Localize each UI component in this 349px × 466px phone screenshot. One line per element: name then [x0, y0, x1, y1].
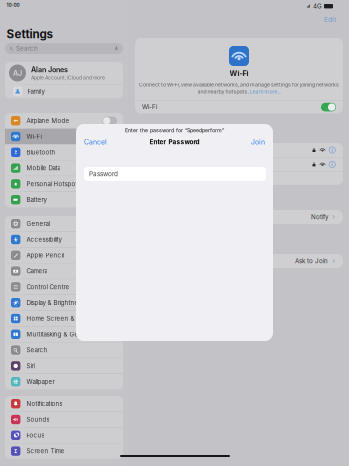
button[interactable]: Apple Pencil — [5, 248, 123, 263]
staticText: Focus — [26, 432, 44, 439]
staticText: and nearby hotspots. — [197, 88, 249, 95]
staticText: Bluetooth — [26, 149, 55, 156]
staticText: Alan Jones — [31, 65, 68, 74]
staticText: Learn more... — [249, 88, 280, 95]
staticText: Siri — [26, 362, 34, 370]
staticText: Sounds — [26, 416, 49, 423]
button[interactable]: Notifications — [5, 396, 123, 411]
button[interactable]: Camera — [5, 263, 123, 279]
staticText: Mobile Data — [26, 164, 60, 172]
button[interactable]: Display & Brightness — [5, 295, 123, 310]
button[interactable]: Wi-Fi — [5, 129, 123, 144]
staticText: Search — [16, 45, 38, 52]
button[interactable]: Ask to Join — [135, 254, 343, 268]
button[interactable]: Airplane Mode — [5, 113, 123, 128]
button[interactable]: Wallpaper — [5, 374, 123, 389]
staticText: 4G — [313, 2, 322, 10]
button[interactable]: Bluetooth — [5, 145, 123, 160]
staticText: General — [26, 220, 49, 227]
staticText: Notifications — [26, 400, 62, 407]
button[interactable]: Search — [5, 342, 123, 358]
staticText: Screen Time — [26, 447, 64, 455]
staticText: 10:00 — [6, 2, 19, 8]
button[interactable]: General — [5, 216, 123, 231]
staticText: Join — [251, 138, 265, 146]
button[interactable]: Multitasking & Gestures — [5, 327, 123, 342]
staticText: Airplane Mode — [26, 117, 69, 124]
staticText: Password — [89, 170, 118, 178]
staticText: Family — [27, 88, 44, 95]
button[interactable]: Battery — [5, 192, 123, 207]
button[interactable]: Accessibility — [5, 232, 123, 247]
button[interactable]: Screen Time — [5, 443, 123, 459]
staticText: Control Centre — [26, 283, 69, 291]
staticText: Personal Hotspot — [26, 180, 77, 188]
staticText: Ask to Join — [295, 257, 328, 265]
button[interactable]: AJ — [5, 62, 123, 84]
button[interactable]: Personal Hotspot — [5, 176, 123, 192]
staticText: Connect to Wi-Fi, view available network… — [139, 81, 339, 88]
staticText: Accessibility — [26, 236, 61, 243]
staticText: Enter Password — [149, 138, 199, 146]
staticText: Settings — [6, 27, 52, 41]
staticText: Apple Pencil — [26, 252, 63, 259]
staticText: Enter the password for “Speedperform” — [125, 127, 224, 133]
button[interactable]: Cancel — [84, 137, 110, 147]
staticText: Apple Account, iCloud and more — [31, 74, 105, 81]
staticText: Search — [26, 346, 47, 354]
staticText: Cancel — [84, 138, 107, 146]
button[interactable]: Focus — [5, 428, 123, 443]
button[interactable]: Family — [5, 84, 123, 98]
button[interactable]: Control Centre — [5, 279, 123, 295]
staticText: Wi-Fi — [229, 69, 248, 78]
staticText: Multitasking & Gestures — [26, 331, 96, 338]
button[interactable]: Home Screen & App Library — [5, 311, 123, 326]
staticText: Wallpaper — [26, 378, 54, 385]
button[interactable]: Notify — [135, 210, 343, 224]
button[interactable]: Edit — [318, 15, 336, 24]
button[interactable]: Join — [249, 137, 265, 147]
button[interactable]: Sounds — [5, 412, 123, 427]
staticText: AJ — [13, 69, 22, 77]
staticText: Wi-Fi — [26, 133, 41, 140]
button[interactable]: Siri — [5, 358, 123, 374]
staticText: Display & Brightness — [26, 299, 84, 306]
staticText: Notify — [311, 213, 328, 221]
staticText: Home Screen & App Library — [26, 315, 108, 322]
staticText: Camera — [26, 267, 47, 275]
button[interactable]: Mobile Data — [5, 160, 123, 176]
staticText: Edit — [324, 15, 336, 24]
staticText: Wi-Fi — [142, 103, 157, 111]
staticText: Battery — [26, 196, 46, 203]
